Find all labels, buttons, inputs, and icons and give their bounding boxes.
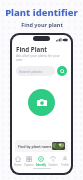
button[interactable]: Garden bbox=[47, 155, 59, 168]
staticText: Find your plant bbox=[21, 21, 63, 28]
button[interactable]: Home bbox=[12, 155, 23, 168]
staticText: Garden bbox=[48, 163, 58, 167]
staticText: Ask all of your plants for your user bbox=[16, 54, 67, 62]
staticText: Explore bbox=[24, 163, 34, 167]
button[interactable]: Find by plant name bbox=[15, 140, 68, 152]
staticText: Search plants bbox=[19, 69, 43, 74]
button[interactable]: Profile bbox=[59, 155, 71, 168]
staticText: Home bbox=[14, 163, 22, 167]
button[interactable]: Search bbox=[57, 66, 67, 76]
button[interactable]: Search plants bbox=[16, 66, 55, 76]
staticText: Profile bbox=[61, 163, 69, 167]
button[interactable]: Identify bbox=[35, 155, 47, 168]
button[interactable]: Identify plant with camera bbox=[28, 89, 55, 116]
staticText: Find Plant bbox=[16, 45, 47, 53]
staticText: Find by plant name bbox=[18, 144, 52, 149]
staticText: Plant identifier bbox=[5, 6, 78, 19]
staticText: Identify bbox=[36, 163, 46, 167]
button[interactable]: Explore bbox=[23, 155, 35, 168]
